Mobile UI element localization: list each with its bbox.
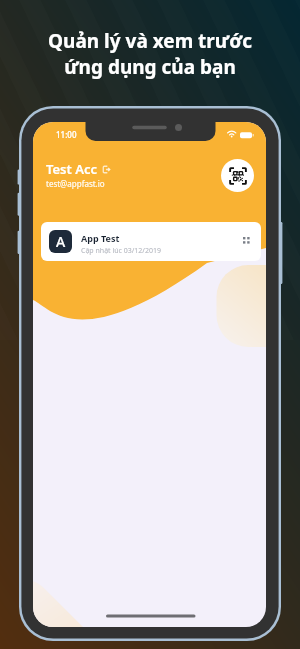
staticText: App Test [81,232,120,244]
button[interactable]: Scan QR code [221,159,254,192]
staticText: Cập nhật lúc 03/12/2019 [81,246,161,256]
button[interactable]: Test Acc [46,160,110,178]
staticText: Test Acc [46,160,97,178]
other: More options [243,237,250,244]
staticText: test@appfast.io [46,178,105,189]
staticText: Quản lý và xem trước ứng dụng của bạn [48,28,252,80]
other: Log out [103,166,110,173]
staticText: A [56,232,66,251]
staticText: 11:00 [56,129,77,140]
button[interactable]: A [41,222,261,261]
